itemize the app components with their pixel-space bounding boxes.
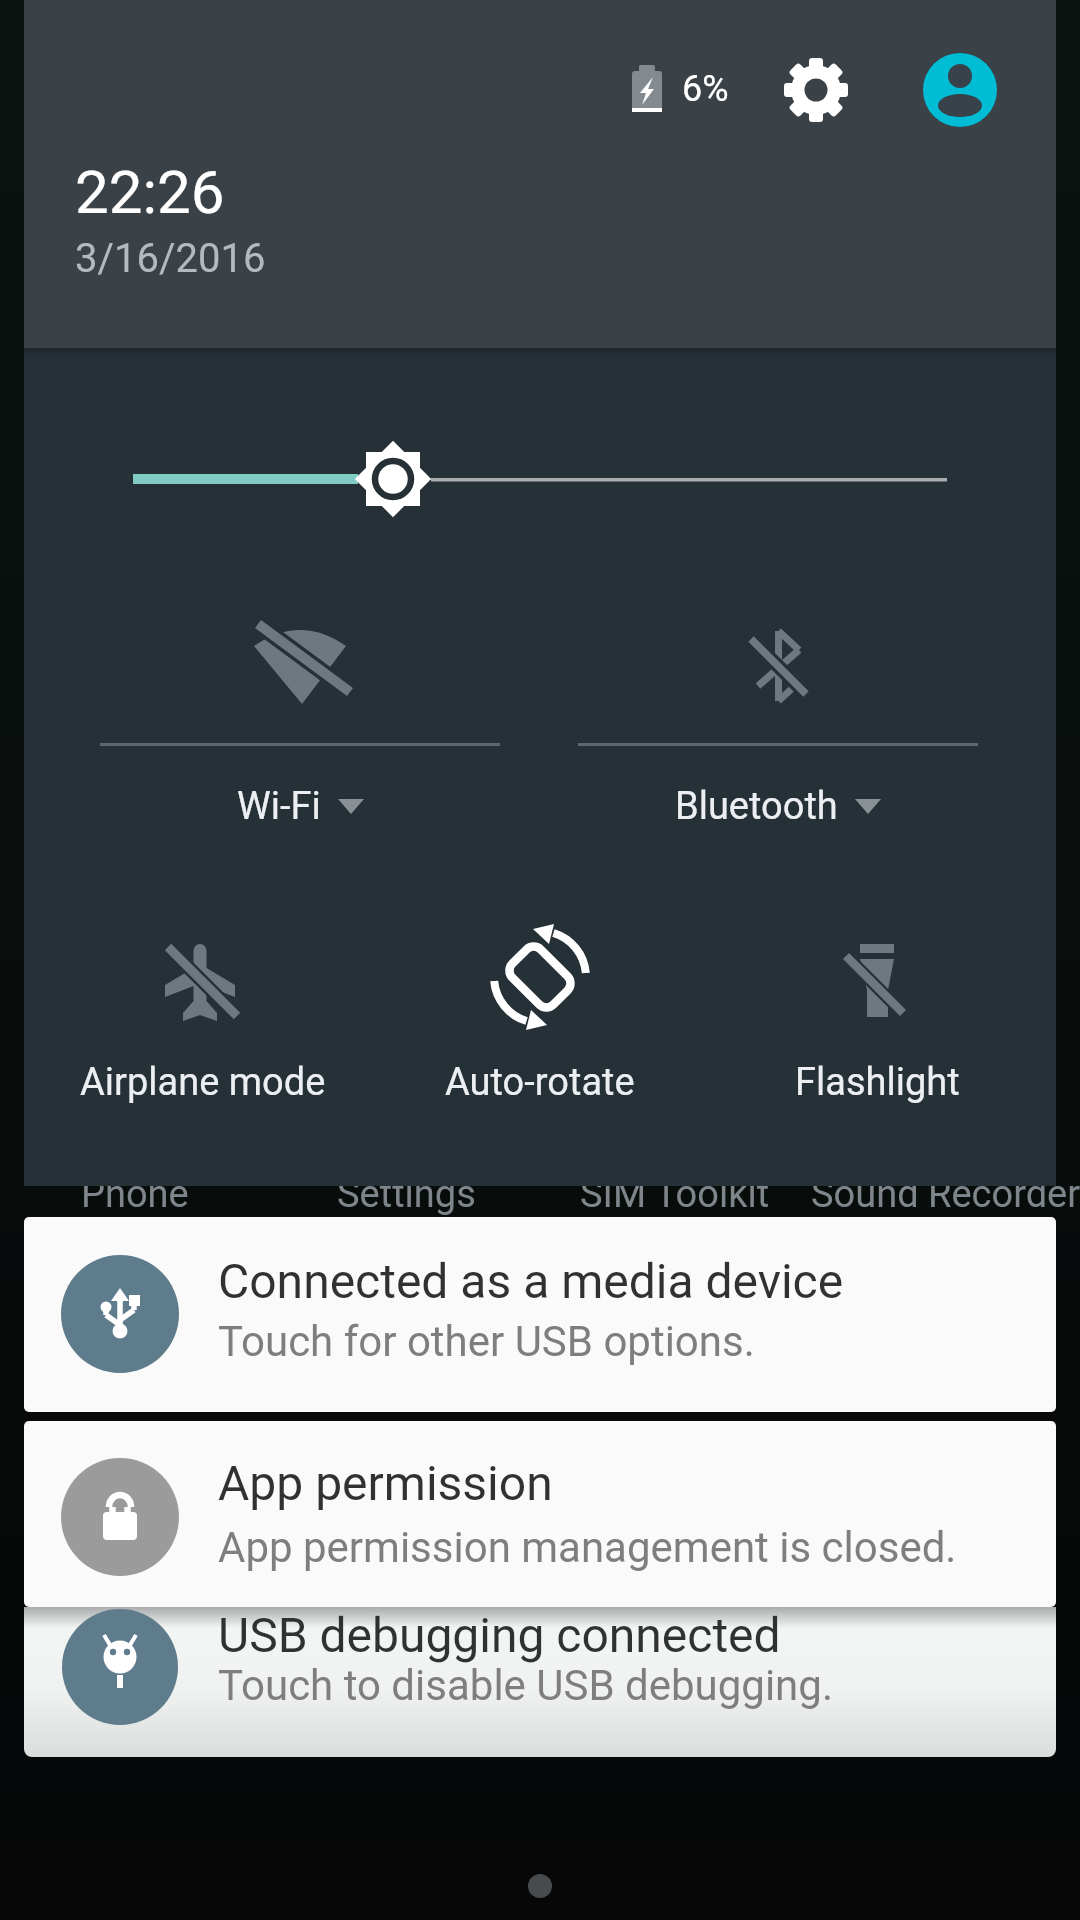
staticText: Flashlight	[795, 1060, 960, 1104]
button[interactable]	[400, 920, 690, 1120]
staticText: SIM Toolkit	[580, 1172, 770, 1216]
staticText: 6%	[682, 68, 729, 110]
staticText: Connected as a media device	[218, 1253, 844, 1309]
staticText: App permission	[218, 1455, 553, 1511]
button[interactable]	[24, 1421, 1056, 1607]
staticText: 22:26	[75, 157, 225, 227]
staticText: Airplane mode	[80, 1060, 326, 1104]
staticText: Wi-Fi	[237, 784, 321, 828]
button[interactable]	[24, 1607, 1056, 1757]
staticText: Settings	[337, 1172, 476, 1216]
staticText: Bluetooth	[675, 784, 838, 828]
staticText: Touch for other USB options.	[218, 1317, 755, 1366]
button[interactable]	[100, 600, 500, 840]
button[interactable]	[740, 920, 1030, 1120]
button[interactable]	[578, 600, 978, 840]
staticText: 3/16/2016	[75, 235, 266, 282]
button[interactable]	[24, 1217, 1056, 1412]
staticText: Phone	[81, 1172, 189, 1216]
staticText: Touch to disable USB debugging.	[218, 1661, 833, 1710]
button[interactable]	[60, 920, 350, 1120]
button[interactable]	[780, 50, 860, 130]
staticText: Sound Recorder	[811, 1172, 1080, 1216]
staticText: App permission management is closed.	[218, 1523, 957, 1572]
button[interactable]	[100, 430, 950, 530]
staticText: USB debugging connected	[218, 1607, 781, 1663]
button[interactable]	[915, 45, 1005, 135]
staticText: Auto-rotate	[445, 1060, 635, 1104]
